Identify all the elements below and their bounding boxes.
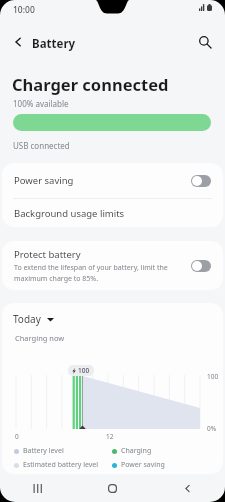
button[interactable]: Toggle [191,175,211,187]
staticText: Today [13,312,41,326]
button[interactable]: Recent apps [0,474,75,502]
button[interactable]: Navigate up [6,30,30,54]
button[interactable]: Home [75,474,150,502]
staticText: 10:00 [13,4,35,16]
staticText: 100 [78,366,90,375]
staticText: To extend the lifespan of your battery, … [14,263,185,283]
staticText: Battery level [23,446,64,456]
staticText: Battery [32,36,76,52]
button[interactable]: Toggle [191,260,211,272]
button[interactable]: Search [193,30,217,54]
staticText: Background usage limits [14,207,125,220]
staticText: Charging [121,446,152,456]
staticText: Protect battery [14,248,81,261]
button[interactable]: Protect battery [2,241,223,290]
staticText: Charging now [15,333,65,343]
button[interactable]: Today [13,312,58,326]
staticText: 100% available [13,98,69,109]
staticText: 0% [207,424,217,433]
staticText: Estimated battery level [23,460,99,470]
staticText: 100 [207,372,219,381]
button[interactable]: Back [150,474,225,502]
staticText: USB connected [13,140,70,151]
button[interactable]: Power saving [2,163,223,198]
staticText: Power saving [14,174,74,187]
staticText: Power saving [121,460,165,470]
button[interactable]: Background usage limits [2,199,223,227]
staticText: 12 [106,432,114,441]
staticText: Charger connected [12,73,169,95]
staticText: 0 [15,432,19,441]
